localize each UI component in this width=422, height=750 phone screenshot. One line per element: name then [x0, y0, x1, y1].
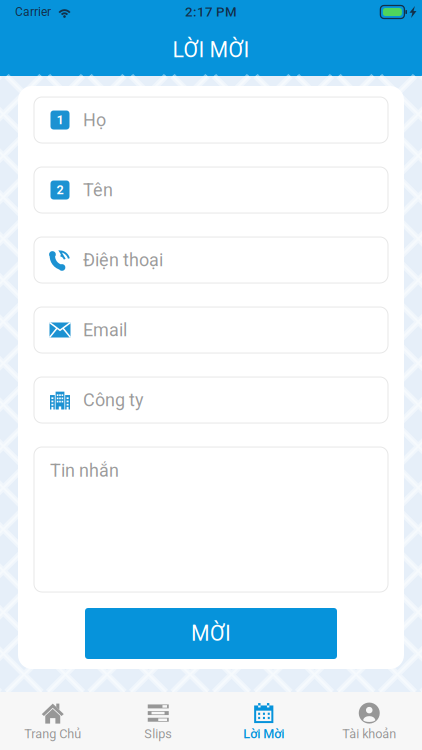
staticText: Carrier: [15, 5, 51, 19]
button[interactable]: Tin nhắn: [34, 447, 388, 592]
staticText: MỜI: [191, 621, 231, 646]
staticText: Điện thoại: [83, 249, 163, 271]
staticText: 1: [56, 113, 63, 127]
button[interactable]: MỜI: [85, 608, 337, 659]
button[interactable]: Điện thoại: [34, 237, 388, 283]
staticText: LỜI MỜI: [172, 37, 249, 62]
staticText: Tài khoản: [342, 727, 396, 741]
staticText: Tin nhắn: [50, 460, 119, 481]
button[interactable]: Email: [34, 307, 388, 353]
button[interactable]: 2: [34, 167, 388, 213]
button[interactable]: Lời Mời: [211, 696, 316, 746]
staticText: Trang Chủ: [24, 727, 81, 741]
staticText: 2: [56, 183, 63, 197]
staticText: Tên: [83, 179, 113, 201]
button[interactable]: 1: [34, 97, 388, 143]
staticText: 2:17 PM: [185, 4, 237, 20]
button[interactable]: Tài khoản: [316, 696, 422, 746]
button[interactable]: Trang Chủ: [0, 696, 105, 746]
staticText: Lời Mời: [243, 727, 284, 741]
staticText: Họ: [83, 109, 106, 131]
button[interactable]: Công ty: [34, 377, 388, 423]
staticText: Slips: [144, 727, 172, 741]
button[interactable]: Slips: [105, 696, 211, 746]
staticText: Email: [83, 319, 127, 341]
staticText: Công ty: [83, 389, 144, 411]
